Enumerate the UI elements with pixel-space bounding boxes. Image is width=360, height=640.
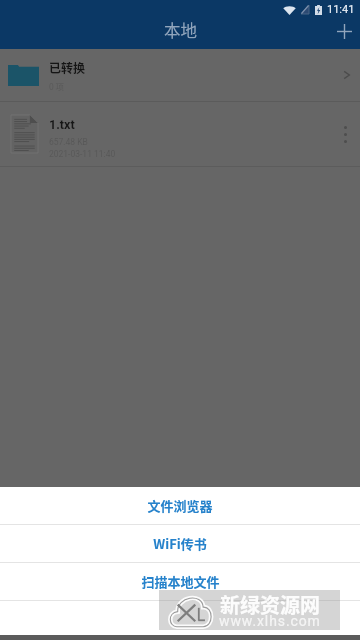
button[interactable]: More options xyxy=(333,112,357,156)
staticText: 1.txt xyxy=(49,117,75,132)
staticText: 扫描本地文件 xyxy=(141,572,220,591)
staticText: 0 项 xyxy=(49,80,65,92)
staticText: WiFi传书 xyxy=(153,534,207,553)
staticText: 文件浏览器 xyxy=(147,496,213,515)
staticText: 新绿资源网 xyxy=(220,590,320,619)
staticText: 11:41 xyxy=(327,3,355,16)
button[interactable]: WiFi传书 xyxy=(0,525,360,562)
staticText: www.xlhs.com xyxy=(219,613,321,629)
staticText: 已转换 xyxy=(49,59,86,76)
button[interactable]: 1.txt xyxy=(0,102,360,166)
button[interactable]: 已转换 xyxy=(0,49,360,101)
staticText: 本地 xyxy=(164,18,197,42)
staticText: 657.48 KB xyxy=(49,137,88,147)
staticText: 2021-03-11 11:40 xyxy=(49,149,116,159)
button[interactable]: Add xyxy=(329,16,360,46)
button[interactable]: 文件浏览器 xyxy=(0,487,360,524)
button[interactable]: 扫描本地文件 xyxy=(0,563,360,600)
